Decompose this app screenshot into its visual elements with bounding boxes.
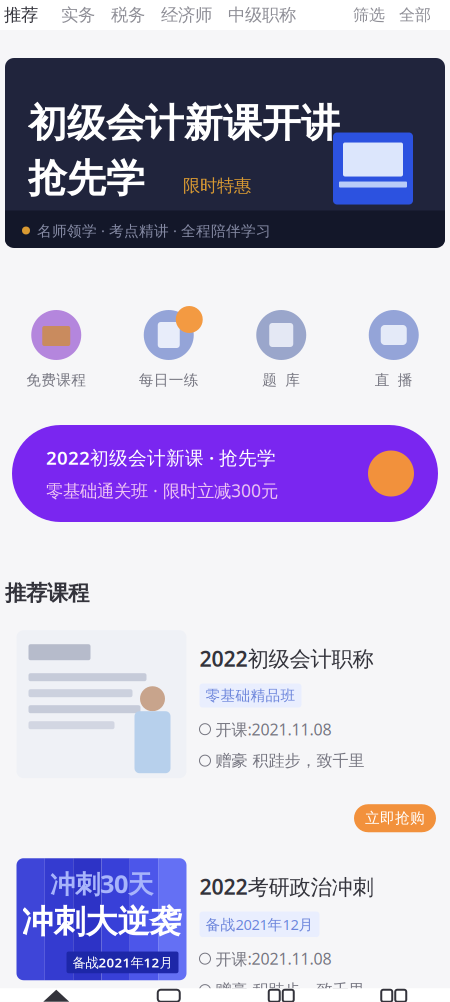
button[interactable]: 初级会计新课开讲 [0, 58, 450, 248]
staticText: 限时特惠 [183, 175, 251, 196]
staticText: 推荐 [4, 4, 38, 26]
button[interactable]: 经济师 [153, 4, 220, 26]
button[interactable]: 免费课程 [0, 309, 112, 389]
staticText: 实务 [61, 4, 95, 26]
button[interactable]: 全部 [392, 5, 450, 25]
staticText: 冲刺大逆袭 [21, 902, 181, 941]
staticText: 2022初级会计职称 [199, 644, 373, 672]
staticText: 经济师 [161, 4, 212, 26]
staticText: 赠豪 积跬步，致千里 [215, 751, 364, 770]
staticText: 零基础通关班 · 限时立减300元 [46, 479, 278, 502]
button[interactable]: 冲刺30天 [5, 858, 444, 980]
staticText: 推荐课程 [5, 580, 89, 606]
staticText: 备战2021年12月 [205, 915, 313, 934]
button[interactable]: 2022初级会计新课 · 抢先学 [0, 425, 450, 522]
button[interactable]: 筛选 [346, 5, 392, 25]
button[interactable]: 中级职称 [220, 4, 304, 26]
button[interactable]: 推荐 [0, 4, 53, 26]
staticText: 2022考研政治冲刺 [199, 872, 373, 900]
staticText: 每日一练 [139, 371, 199, 389]
button[interactable]: 直 播 [337, 309, 450, 389]
staticText: 全部 [399, 5, 431, 25]
staticText: 中级职称 [228, 4, 296, 26]
button[interactable]: 首页 [0, 988, 112, 1001]
staticText: 税务 [111, 4, 145, 26]
button[interactable]: 题 库 [225, 309, 337, 389]
staticText: 直 播 [375, 371, 413, 389]
button[interactable]: 课程 [225, 988, 337, 1001]
button[interactable]: 我的 [337, 988, 450, 1001]
button[interactable]: 题库 [112, 988, 225, 1001]
staticText: 抢先学 [28, 155, 145, 202]
button[interactable]: 税务 [103, 4, 153, 26]
staticText: 免费课程 [26, 371, 86, 389]
staticText: 备战2021年12月 [72, 953, 172, 971]
staticText: 初级会计新课开讲 [28, 99, 340, 147]
staticText: 零基础精品班 [205, 686, 295, 704]
staticText: 赠豪 积跬步，致千里 [215, 980, 364, 1000]
staticText: 开课:2021.11.08 [215, 948, 331, 969]
button[interactable]: 实务 [53, 4, 103, 26]
staticText: 题 库 [262, 371, 300, 389]
staticText: 名师领学 · 考点精讲 · 全程陪伴学习 [37, 221, 271, 240]
staticText: 筛选 [353, 5, 385, 25]
staticText: 2022初级会计新课 · 抢先学 [46, 445, 276, 470]
staticText: 立即抢购 [365, 809, 425, 827]
staticText: 冲刺30天 [50, 867, 153, 900]
button[interactable]: 每日一练 [112, 309, 225, 389]
button[interactable]: 立即抢购 [354, 804, 436, 832]
button[interactable]: 2022初级会计职称 [5, 630, 444, 778]
staticText: 开课:2021.11.08 [215, 719, 331, 740]
